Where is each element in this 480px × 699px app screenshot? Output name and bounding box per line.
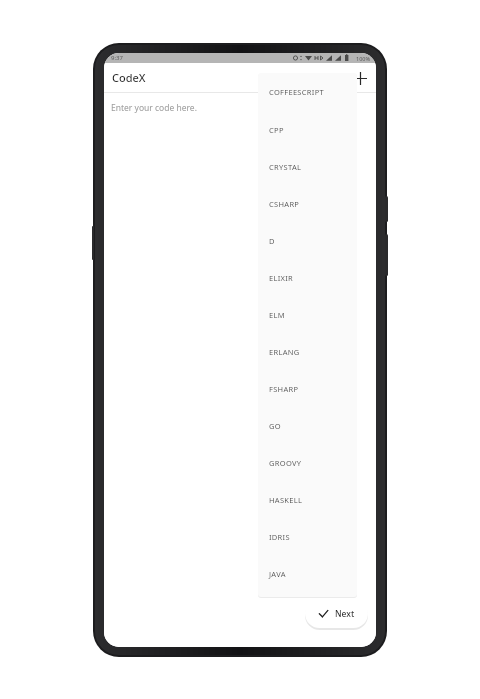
staticText: ERLANG (269, 347, 300, 357)
staticText: CodeX (112, 70, 146, 85)
staticText: ELM (269, 310, 285, 320)
button[interactable]: Next (305, 599, 368, 628)
button[interactable]: COFFEESCRIPT (258, 73, 357, 111)
button[interactable]: Add (347, 65, 373, 91)
staticText: CPP (269, 125, 284, 135)
staticText: HASKELL (269, 495, 303, 505)
staticText: GO (269, 421, 281, 431)
staticText: FSHARP (269, 384, 299, 394)
button[interactable]: GROOVY (258, 444, 357, 481)
button[interactable]: CSHARP (258, 185, 357, 222)
staticText: IDRIS (269, 532, 290, 542)
staticText: Next (335, 608, 355, 620)
button[interactable]: FSHARP (258, 370, 357, 407)
staticText: CRYSTAL (269, 162, 302, 172)
button[interactable]: D (258, 222, 357, 259)
staticText: CSHARP (269, 199, 300, 209)
staticText: GROOVY (269, 458, 302, 468)
button[interactable]: ELIXIR (258, 259, 357, 296)
staticText: JAVA (269, 569, 286, 579)
button[interactable]: JAVA (258, 555, 357, 592)
staticText: ELIXIR (269, 273, 294, 283)
button[interactable]: ERLANG (258, 333, 357, 370)
staticText: 100% (356, 55, 371, 62)
button[interactable]: HASKELL (258, 481, 357, 518)
button[interactable]: CPP (258, 111, 357, 148)
staticText: 9:37 (111, 54, 123, 62)
staticText: COFFEESCRIPT (269, 87, 324, 97)
button[interactable]: GO (258, 407, 357, 444)
button[interactable]: CRYSTAL (258, 148, 357, 185)
staticText: D (269, 236, 275, 246)
button[interactable]: ELM (258, 296, 357, 333)
button[interactable]: IDRIS (258, 518, 357, 555)
staticText: Enter your code here. (111, 102, 197, 114)
